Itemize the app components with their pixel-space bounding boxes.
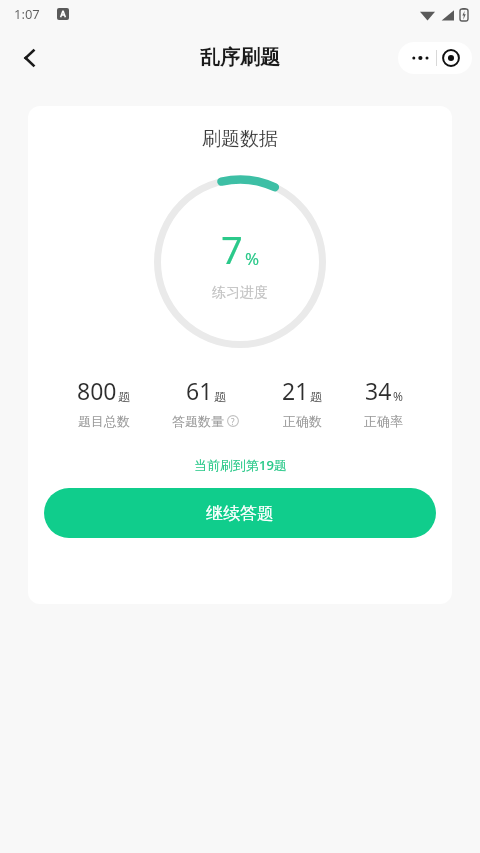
- staticText: 1:07: [14, 5, 40, 23]
- staticText: 题: [118, 389, 130, 404]
- button[interactable]: Menu and Close: [398, 42, 472, 74]
- staticText: ?: [231, 416, 235, 427]
- staticText: 34: [365, 375, 392, 406]
- staticText: 7: [221, 223, 243, 275]
- staticText: 题: [310, 389, 322, 404]
- staticText: 正确率: [364, 413, 403, 429]
- staticText: 乱序刷题: [200, 45, 280, 70]
- staticText: 正确数: [283, 413, 322, 429]
- staticText: %: [245, 247, 260, 270]
- staticText: 题目总数: [78, 413, 130, 429]
- staticText: 继续答题: [206, 503, 274, 524]
- staticText: 答题数量: [172, 413, 224, 429]
- button[interactable]: 继续答题: [44, 488, 436, 538]
- staticText: 刷题数据: [202, 127, 278, 151]
- staticText: %: [393, 388, 403, 404]
- staticText: 800: [77, 375, 117, 406]
- staticText: 21: [282, 375, 309, 406]
- staticText: 练习进度: [212, 284, 268, 302]
- staticText: 题: [214, 389, 226, 404]
- button[interactable]: Back: [6, 34, 54, 82]
- staticText: 61: [186, 375, 213, 406]
- staticText: 当前刷到第19题: [194, 456, 287, 474]
- button[interactable]: Help: [227, 415, 239, 427]
